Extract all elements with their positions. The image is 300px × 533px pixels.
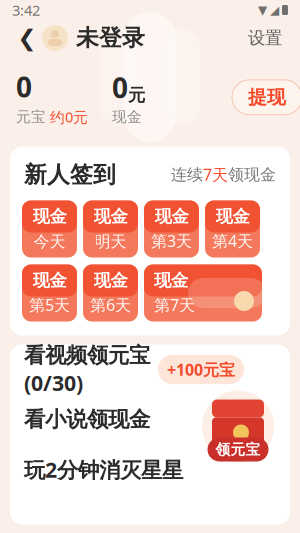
button[interactable]: 提现 [232,80,300,115]
button[interactable]: Back [12,21,42,55]
button[interactable]: 设置 [242,21,288,55]
staticText: 约0元 [50,107,88,127]
staticText: 第3天 [151,230,192,251]
staticText: +100元宝 [167,359,235,380]
button[interactable]: 现金 [144,264,262,321]
staticText: 领现金 [228,165,276,184]
staticText: 看小说领现金 [24,406,150,433]
staticText: 0 [112,69,128,106]
staticText: 领元宝 [215,440,260,458]
staticText: 新人签到 [24,161,116,188]
staticText: ▼ [258,3,267,17]
staticText: 现金 [93,206,127,227]
button[interactable]: 现金 [22,264,77,321]
button[interactable]: 现金 [83,200,138,257]
staticText: 现金 [32,270,66,291]
staticText: 现金 [32,206,66,227]
button[interactable]: 玩2分钟消灭星星 [10,444,290,494]
button[interactable]: 看小说领现金 [10,394,290,444]
staticText: 元 [128,85,145,106]
staticText: 未登录 [76,24,145,52]
staticText: 现金 [154,270,188,291]
button[interactable]: 现金 [83,264,138,321]
staticText: 第4天 [212,230,253,251]
staticText: 玩2分钟消灭星星 [24,455,183,484]
button[interactable]: 看视频领元宝(0/30) [10,344,290,394]
staticText: 现金 [93,270,127,291]
staticText: 第6天 [90,294,131,315]
staticText: 现金 [112,108,142,126]
staticText: 第7天 [154,294,195,315]
staticText: 今天 [33,232,65,251]
staticText: 3:42 [12,0,40,20]
staticText: 提现 [248,86,286,109]
button[interactable]: 现金 [22,200,77,257]
button[interactable]: 现金 [205,200,260,257]
staticText: 现金 [154,206,188,227]
staticText: 现金 [215,206,249,227]
staticText: 明天 [94,232,126,251]
staticText: ❮ [17,25,36,51]
button[interactable]: 现金 [144,200,199,257]
staticText: 看视频领元宝(0/30) [24,342,150,397]
staticText: 第5天 [29,294,70,315]
staticText: ◢ [270,3,279,17]
staticText: 元宝 [16,108,46,126]
staticText: 7天 [203,164,228,185]
staticText: 0 [16,68,32,105]
staticText: 连续 [171,165,203,184]
staticText: 设置 [248,27,282,49]
